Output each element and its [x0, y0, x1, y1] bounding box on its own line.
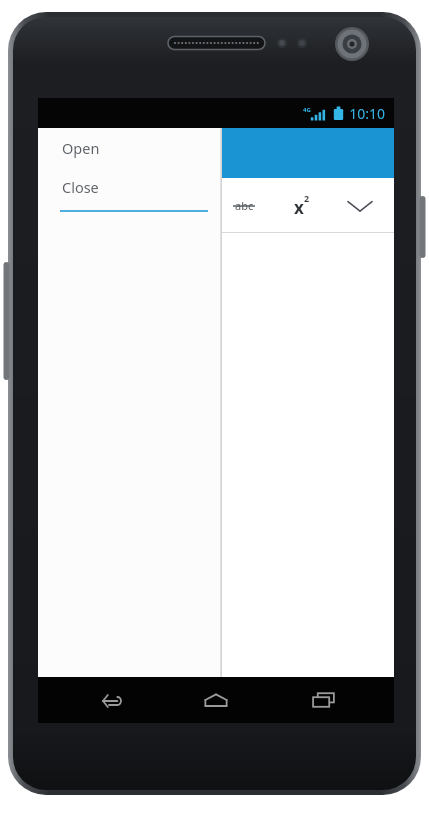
staticText: 10:10 — [349, 104, 385, 123]
staticText: Open — [62, 138, 100, 158]
button[interactable]: Back — [72, 677, 146, 723]
button[interactable]: Superscript — [274, 178, 330, 233]
button[interactable]: Recent apps — [287, 677, 361, 723]
button[interactable]: Open — [38, 128, 222, 167]
staticText: abc — [235, 198, 254, 213]
button[interactable]: Close — [38, 167, 222, 206]
button[interactable]: More formatting options — [332, 178, 388, 233]
staticText: 2 — [304, 192, 310, 204]
staticText: 4G — [303, 106, 311, 114]
staticText: x — [294, 196, 304, 219]
button[interactable]: Home — [179, 677, 253, 723]
staticText: Close — [62, 177, 99, 197]
button[interactable]: Strikethrough — [216, 178, 272, 233]
